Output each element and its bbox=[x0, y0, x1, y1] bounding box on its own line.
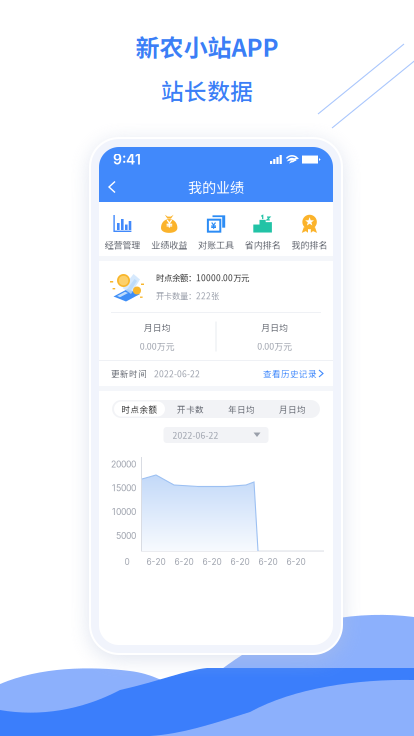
staticText: 查看历史记录 bbox=[263, 367, 317, 380]
button[interactable]: 年日均 bbox=[216, 401, 267, 416]
button[interactable]: 查看历史记录 bbox=[263, 363, 323, 384]
staticText: 2022-06-22 bbox=[172, 429, 218, 441]
staticText: 时点余额：10000.00万元 bbox=[156, 271, 249, 284]
staticText: 2022-06-22 bbox=[154, 367, 200, 380]
staticText: 我的业绩 bbox=[188, 177, 244, 197]
staticText: 开卡数 bbox=[177, 403, 204, 415]
button[interactable]: 省内排名 bbox=[239, 202, 286, 256]
button[interactable]: 时点余额 bbox=[114, 401, 165, 416]
button[interactable]: 业绩收益 bbox=[146, 202, 193, 256]
staticText: 新农小站APP bbox=[135, 29, 278, 64]
staticText: 月日均 bbox=[261, 321, 288, 333]
staticText: 0 bbox=[124, 557, 129, 567]
button[interactable]: 开卡数 bbox=[165, 401, 216, 416]
button[interactable]: 2022-06-22 bbox=[163, 427, 268, 443]
staticText: 6-20 bbox=[174, 557, 193, 567]
staticText: 站长数据 bbox=[161, 74, 253, 107]
staticText: 0.00万元 bbox=[140, 339, 175, 352]
staticText: 业绩收益 bbox=[151, 238, 187, 251]
staticText: 年日均 bbox=[228, 403, 255, 415]
staticText: 6-20 bbox=[202, 557, 221, 567]
staticText: 时点余额 bbox=[121, 403, 157, 415]
button[interactable]: 经营管理 bbox=[99, 202, 146, 256]
button[interactable]: 对账工具 bbox=[193, 202, 239, 256]
staticText: 15000 bbox=[112, 483, 136, 493]
staticText: 月日均 bbox=[144, 321, 171, 333]
staticText: 开卡数量：222张 bbox=[156, 290, 219, 302]
staticText: 20000 bbox=[111, 459, 136, 469]
staticText: 10000 bbox=[112, 507, 136, 517]
staticText: 省内排名 bbox=[245, 238, 281, 251]
staticText: 对账工具 bbox=[198, 238, 234, 251]
staticText: 0.00万元 bbox=[257, 339, 292, 352]
staticText: 6-20 bbox=[146, 557, 165, 567]
staticText: 6-20 bbox=[286, 557, 305, 567]
staticText: 更新时间 bbox=[111, 367, 147, 380]
button[interactable]: 我的排名 bbox=[286, 202, 333, 256]
staticText: 我的排名 bbox=[292, 238, 328, 251]
staticText: 5000 bbox=[116, 530, 136, 541]
staticText: 9:41 bbox=[113, 151, 141, 168]
staticText: 月日均 bbox=[279, 403, 306, 415]
staticText: 经营管理 bbox=[104, 238, 140, 251]
staticText: 6-20 bbox=[230, 557, 249, 567]
staticText: 6-20 bbox=[258, 557, 277, 567]
button[interactable]: 返回 bbox=[99, 172, 125, 202]
button[interactable]: 月日均 bbox=[267, 401, 318, 416]
